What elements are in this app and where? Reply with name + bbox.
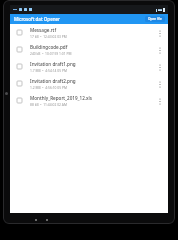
button[interactable]: Select Invitation draft1.png: [14, 61, 25, 72]
button[interactable]: More options: [155, 60, 164, 74]
button[interactable]: More options: [155, 77, 164, 91]
staticText: Microsoft dat Opener: [14, 16, 61, 22]
staticText: Invitation draft1.png: [30, 61, 76, 67]
button[interactable]: Select Message.rtf: [10, 24, 168, 41]
button[interactable]: Select Buildingcode.pdf: [10, 41, 168, 58]
button[interactable]: Select Message.rtf: [14, 27, 25, 38]
button[interactable]: Select Invitation draft1.png: [10, 58, 168, 75]
button[interactable]: More options: [155, 26, 164, 40]
staticText: 17 kB • 12:43:02 03 PM: [30, 34, 67, 38]
button[interactable]: Select Monthly_Report_2019_12.xls: [10, 92, 168, 109]
staticText: 240 kB • 10:07:59 1:01 PM: [30, 51, 72, 55]
button[interactable]: Select Invitation draft2.png: [14, 78, 25, 89]
staticText: Buildingcode.pdf: [30, 44, 68, 50]
button[interactable]: Select Buildingcode.pdf: [14, 44, 25, 55]
button[interactable]: Open file: [145, 16, 165, 22]
staticText: Invitation draft2.png: [30, 78, 76, 84]
button[interactable]: More options: [155, 94, 164, 108]
staticText: 88 kB • 11:44:02 02 AM: [30, 102, 67, 106]
staticText: Monthly_Report_2019_12.xls: [30, 95, 93, 101]
staticText: Open file: [148, 17, 162, 21]
button[interactable]: More options: [155, 43, 164, 57]
staticText: Message.rtf: [30, 27, 57, 33]
staticText: 1.7 MB • 4:54:14 05 PM: [30, 68, 67, 72]
button[interactable]: Select Invitation draft2.png: [10, 75, 168, 92]
staticText: 1.2 MB • 4:56:10 05 PM: [30, 85, 67, 89]
button[interactable]: Select Monthly_Report_2019_12.xls: [14, 95, 25, 106]
